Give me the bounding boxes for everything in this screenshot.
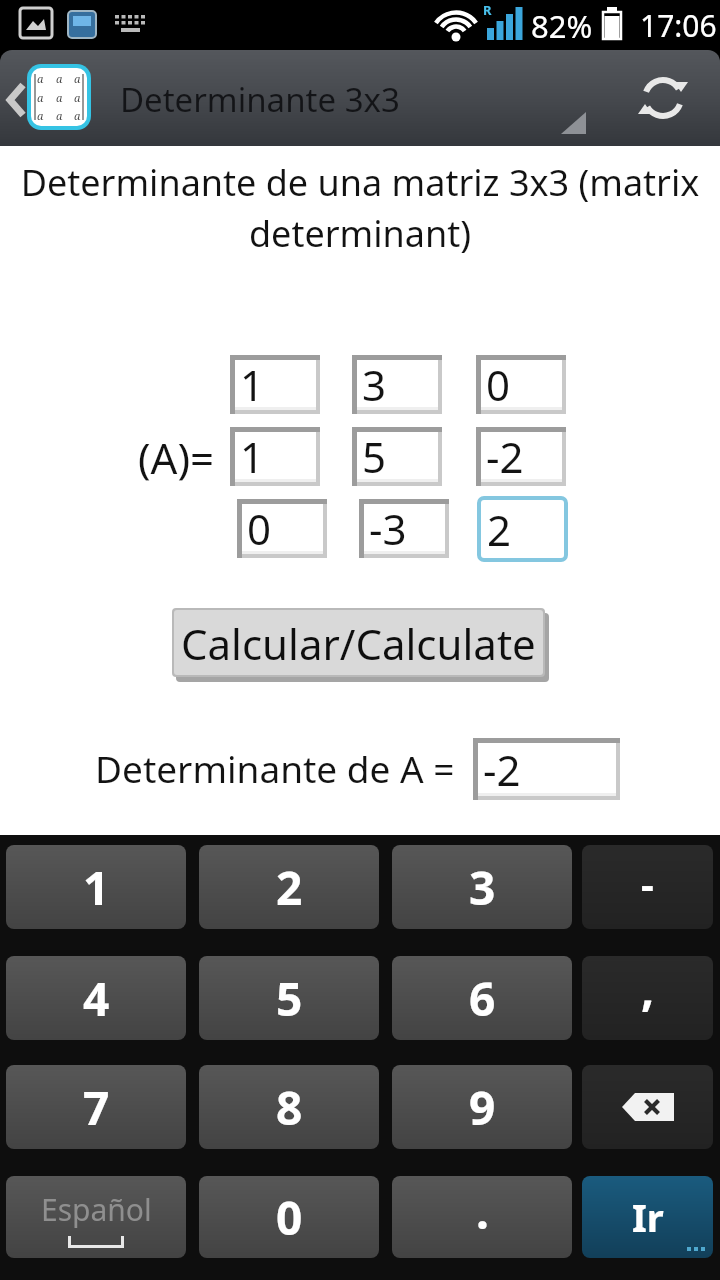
staticText: Determinante 3x3 (120, 77, 400, 122)
button[interactable]: 0 (237, 499, 327, 558)
staticText: 2 (487, 501, 512, 558)
button[interactable]: -2 (476, 427, 566, 486)
staticText: 82% (531, 5, 593, 47)
button[interactable]: 4 (6, 956, 186, 1040)
staticText: a (56, 90, 63, 105)
staticText: 7 (83, 1076, 110, 1139)
staticText: 0 (247, 500, 272, 557)
button[interactable]: . (392, 1176, 572, 1258)
staticText: -3 (369, 500, 407, 557)
staticText: 1 (240, 428, 265, 485)
button[interactable]: 1 (6, 845, 186, 929)
button[interactable]: Calcular/Calculate (172, 608, 549, 682)
button[interactable]: Español (6, 1176, 186, 1258)
button[interactable]: 3 (352, 355, 442, 414)
button[interactable]: 0 (476, 355, 566, 414)
staticText: 9 (469, 1076, 496, 1139)
staticText: . (476, 1180, 489, 1243)
button[interactable]: 3 (392, 845, 572, 929)
button[interactable]: 6 (392, 956, 572, 1040)
staticText: -2 (486, 428, 524, 485)
staticText: Español (41, 1189, 152, 1230)
staticText: a (56, 71, 63, 86)
staticText: , (641, 957, 655, 1020)
staticText: 3 (362, 356, 387, 413)
button[interactable]: 0 (199, 1176, 379, 1258)
staticText: a (56, 108, 63, 123)
staticText: a (37, 71, 44, 86)
button[interactable]: -2 (473, 738, 620, 800)
staticText: a (37, 90, 44, 105)
staticText: (A)= (138, 429, 215, 486)
staticText: 0 (276, 1186, 303, 1249)
button[interactable]: 2 (199, 845, 379, 929)
button[interactable]: Ir (582, 1176, 713, 1258)
button[interactable]: 1 (230, 427, 320, 486)
staticText: 2 (276, 856, 303, 919)
staticText: 3 (469, 856, 496, 919)
button[interactable]: 5 (352, 427, 442, 486)
staticText: a (37, 108, 44, 123)
staticText: 1 (240, 356, 265, 413)
staticText: - (641, 856, 654, 910)
button[interactable]: 9 (392, 1065, 572, 1149)
button[interactable]: 2 (477, 496, 568, 562)
button[interactable] (638, 73, 688, 123)
button[interactable] (582, 1065, 713, 1149)
staticText: a (74, 71, 81, 86)
staticText: 4 (83, 967, 110, 1030)
staticText: Determinante de una matriz 3x3 (matrix d… (0, 158, 720, 258)
staticText: a (74, 108, 81, 123)
button[interactable]: 5 (199, 956, 379, 1040)
button[interactable]: 8 (199, 1065, 379, 1149)
staticText: a (74, 90, 81, 105)
staticText: R (483, 1, 492, 19)
button[interactable]: 7 (6, 1065, 186, 1149)
staticText: 8 (276, 1076, 303, 1139)
button[interactable]: -3 (359, 499, 449, 558)
staticText: -2 (483, 741, 521, 798)
staticText: 1 (83, 856, 110, 919)
staticText: 5 (362, 428, 387, 485)
staticText: 17:06 (640, 5, 717, 46)
staticText: 6 (469, 967, 496, 1030)
staticText: Determinante de A = (95, 743, 455, 793)
staticText: Ir (632, 1191, 664, 1243)
staticText: Calcular/Calculate (181, 615, 536, 672)
staticText: 0 (486, 356, 511, 413)
button[interactable]: - (582, 845, 713, 929)
button[interactable]: 1 (230, 355, 320, 414)
button[interactable]: , (582, 956, 713, 1040)
staticText: 5 (276, 967, 303, 1030)
